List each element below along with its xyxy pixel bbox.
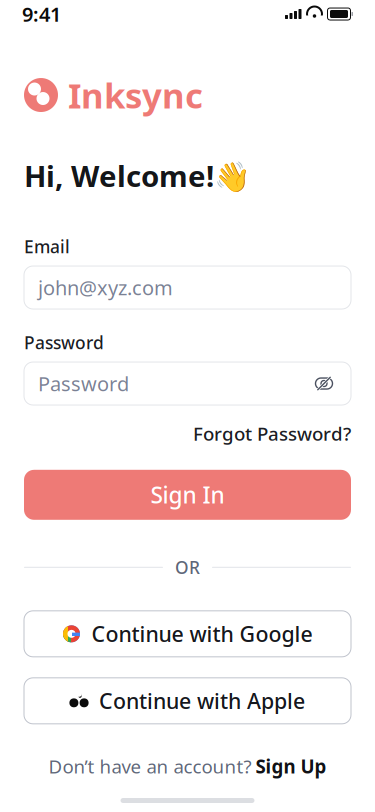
button[interactable]: Forgot Password? <box>193 421 351 446</box>
staticText: OR <box>175 556 200 579</box>
staticText: Email <box>24 235 70 258</box>
staticText: john@xyz.com <box>38 274 173 301</box>
staticText: Password <box>24 331 104 354</box>
button[interactable]: Sign In <box>24 470 351 520</box>
staticText: Don’t have an account? <box>48 754 251 779</box>
button[interactable]: Continue with Apple <box>24 678 351 724</box>
button[interactable]: Show password <box>311 370 337 396</box>
staticText: Inksync <box>68 72 203 118</box>
staticText: Continue with Google <box>91 620 312 648</box>
staticText: Hi, Welcome!👋 <box>24 156 251 195</box>
button[interactable]: Don’t have an account? <box>24 754 351 779</box>
button[interactable]: Continue with Google <box>24 611 351 657</box>
staticText: Continue with Apple <box>99 687 305 715</box>
staticText: Password <box>38 370 129 397</box>
staticText: Forgot Password? <box>193 421 351 446</box>
staticText: Sign In <box>150 480 224 510</box>
staticText: 9:41 <box>22 1 61 27</box>
staticText: Sign Up <box>255 754 326 779</box>
